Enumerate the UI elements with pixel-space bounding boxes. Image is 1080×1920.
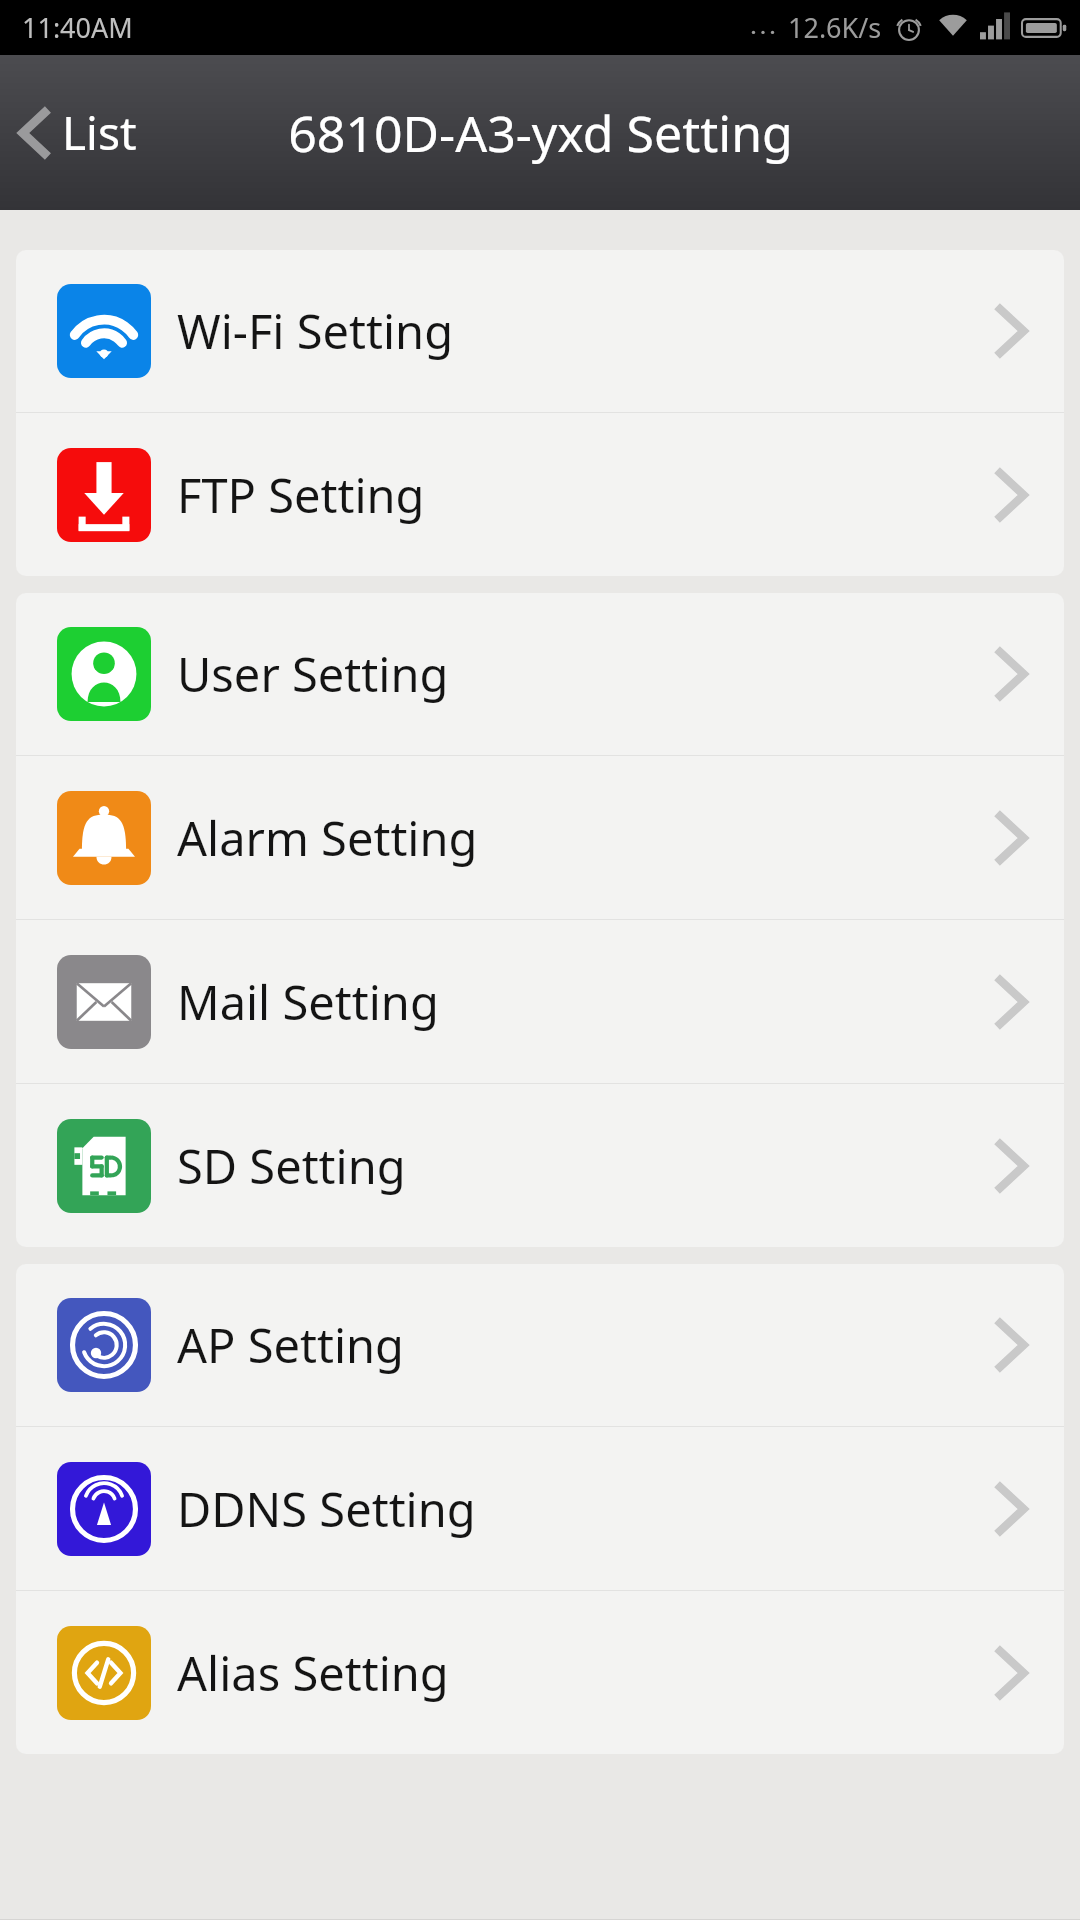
staticText: User Setting — [177, 642, 992, 706]
staticText: SD Setting — [177, 1134, 992, 1198]
staticText: FTP Setting — [177, 463, 992, 527]
button[interactable]: Alarm Setting — [16, 756, 1064, 919]
staticText: Wi-Fi Setting — [177, 299, 992, 363]
button[interactable]: DDNS Setting — [16, 1427, 1064, 1590]
button[interactable]: FTP Setting — [16, 413, 1064, 576]
button[interactable]: Mail Setting — [16, 920, 1064, 1083]
staticText: Alarm Setting — [177, 806, 992, 870]
staticText: Mail Setting — [177, 970, 992, 1034]
button[interactable]: User Setting — [16, 593, 1064, 755]
button[interactable]: Wi-Fi Setting — [16, 250, 1064, 412]
staticText: DDNS Setting — [177, 1477, 992, 1541]
button[interactable]: List — [0, 91, 155, 174]
staticText: 6810D-A3-yxd Setting — [288, 99, 793, 167]
staticText: AP Setting — [177, 1313, 992, 1377]
staticText: 11:40AM — [22, 9, 133, 46]
staticText: 12.6K/s — [788, 9, 882, 46]
staticText: Alias Setting — [177, 1641, 992, 1705]
button[interactable]: Alias Setting — [16, 1591, 1064, 1754]
button[interactable]: AP Setting — [16, 1264, 1064, 1426]
staticText: List — [62, 101, 137, 164]
button[interactable]: SD Setting — [16, 1084, 1064, 1247]
